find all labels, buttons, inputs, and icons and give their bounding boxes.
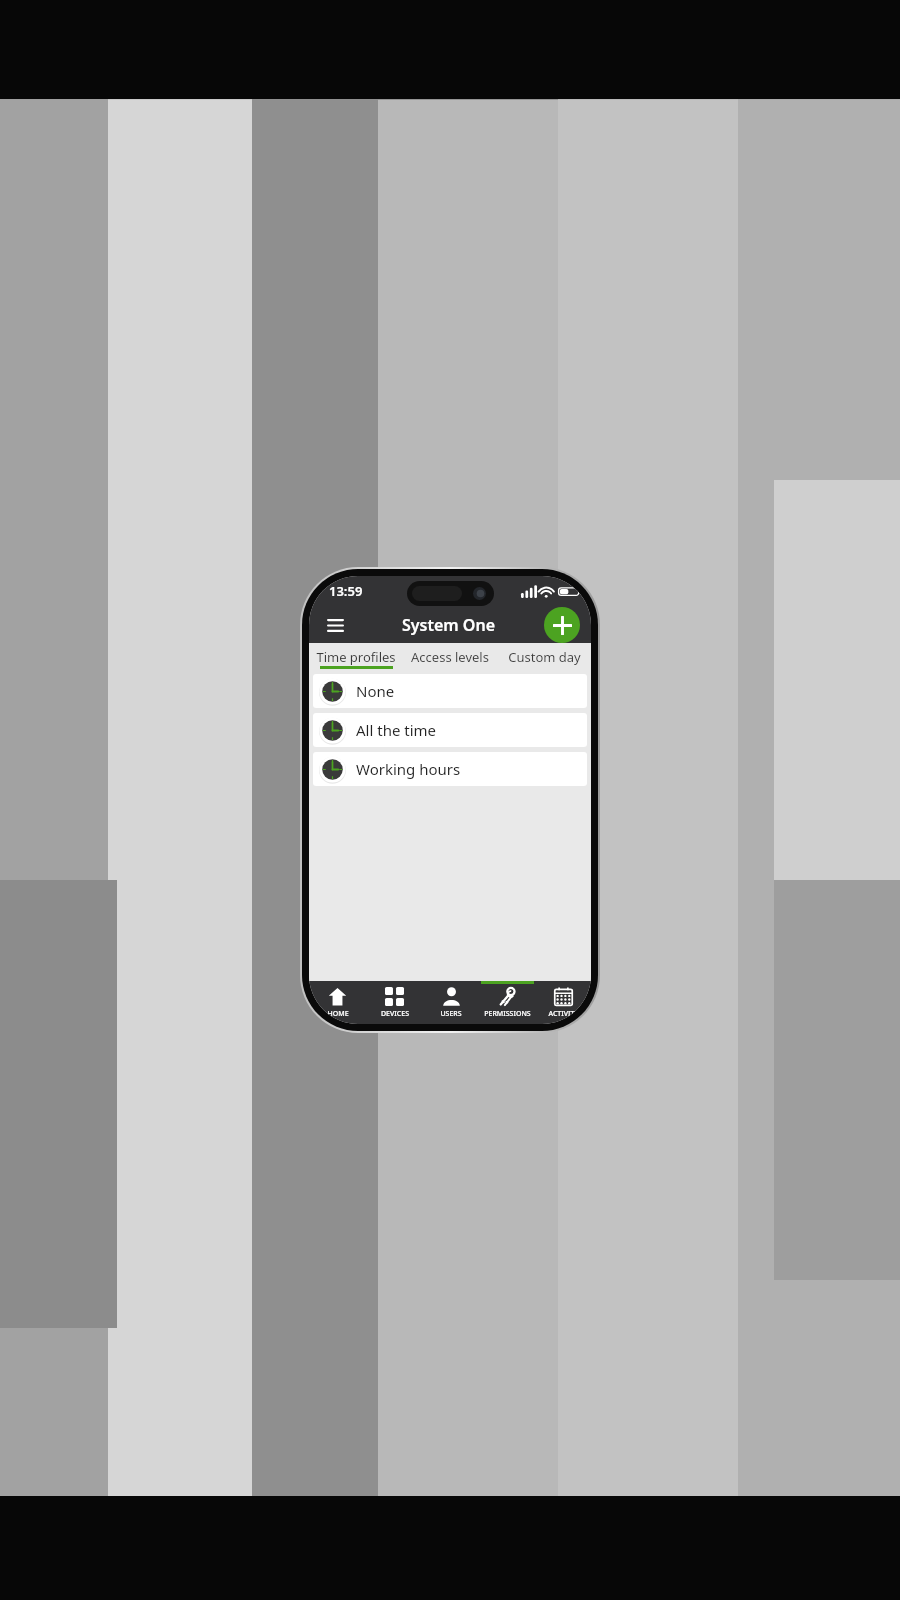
staticText: PERMISSIONS: [484, 1009, 531, 1019]
staticText: ACTIVITY: [548, 1009, 579, 1019]
staticText: Access levels: [411, 648, 489, 666]
button[interactable]: HOME: [309, 981, 366, 1024]
button[interactable]: Working hours: [313, 752, 587, 786]
staticText: All the time: [356, 720, 437, 740]
button[interactable]: PERMISSIONS: [479, 981, 535, 1024]
button[interactable]: ACTIVITY: [535, 981, 591, 1024]
staticText: DEVICES: [381, 1009, 409, 1019]
staticText: Time profiles: [316, 648, 396, 666]
button[interactable]: None: [313, 674, 587, 708]
button[interactable]: Time profiles: [309, 643, 403, 670]
button[interactable]: Custom day: [497, 643, 591, 670]
button[interactable]: All the time: [313, 713, 587, 747]
staticText: 13:59: [329, 582, 363, 600]
staticText: Working hours: [356, 759, 461, 779]
button[interactable]: Menu: [318, 608, 352, 642]
button[interactable]: DEVICES: [366, 981, 423, 1024]
staticText: USERS: [440, 1009, 462, 1019]
staticText: HOME: [327, 1009, 349, 1019]
button[interactable]: Add: [544, 607, 580, 643]
button[interactable]: Access levels: [403, 643, 497, 670]
staticText: System One: [402, 614, 495, 636]
button[interactable]: USERS: [423, 981, 479, 1024]
staticText: None: [356, 681, 395, 701]
staticText: Custom day: [508, 648, 581, 666]
